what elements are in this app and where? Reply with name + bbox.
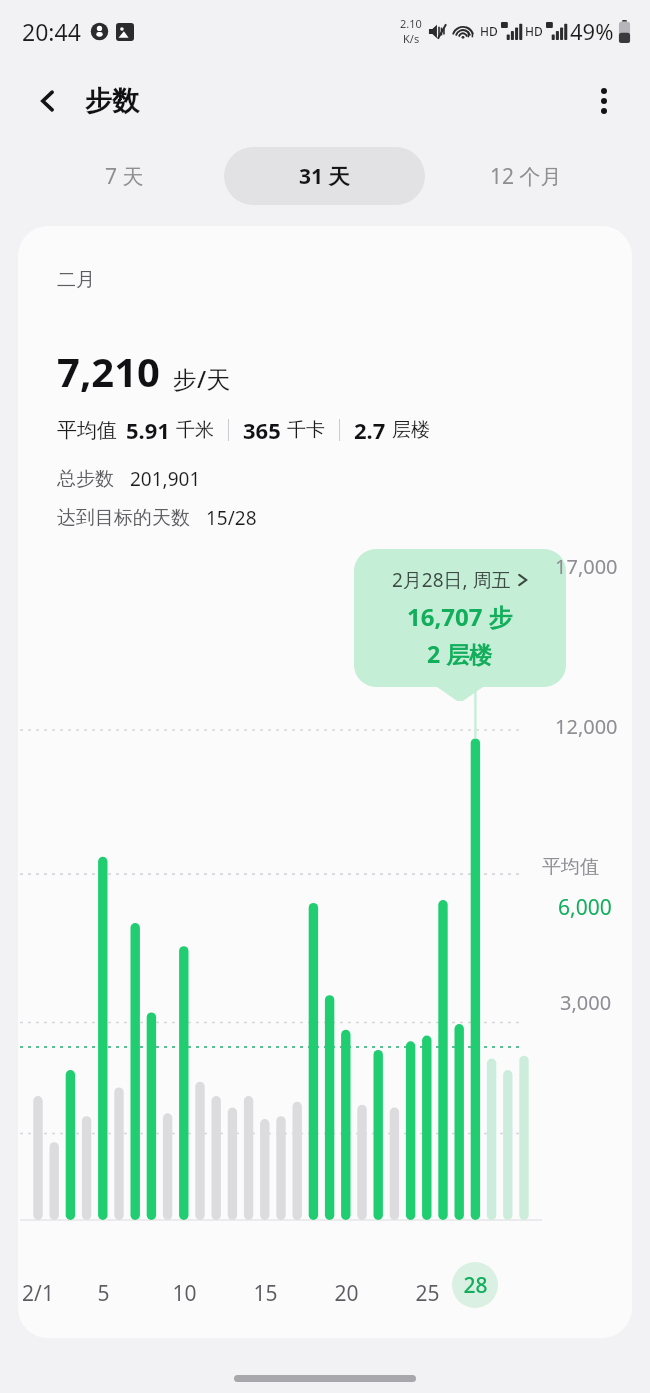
staticText: 达到目标的天数 — [57, 506, 190, 530]
staticText: 3,000 — [560, 989, 612, 1016]
button[interactable]: 12 个月 — [425, 147, 626, 205]
staticText: 20 — [334, 1279, 359, 1308]
staticText: 365 — [243, 415, 281, 445]
staticText: 12 个月 — [490, 162, 562, 191]
staticText: 总步数 — [57, 467, 114, 491]
button[interactable]: More options — [582, 79, 626, 123]
staticText: 步数 — [85, 84, 139, 118]
staticText: 12,000 — [555, 713, 618, 740]
staticText: 6,000 — [558, 893, 612, 922]
staticText: 25 — [415, 1279, 440, 1308]
staticText: 49% — [570, 16, 614, 46]
staticText: 平均值 — [57, 418, 117, 443]
staticText: 千米 — [176, 418, 214, 442]
staticText: 2 层楼 — [427, 638, 493, 669]
staticText: 步/天 — [173, 362, 231, 395]
button[interactable]: Back — [26, 79, 70, 123]
staticText: 20:44 — [22, 16, 81, 47]
staticText: 10 — [172, 1279, 197, 1308]
staticText: 2.7 — [354, 415, 386, 445]
staticText: 17,000 — [555, 553, 618, 580]
staticText: 千卡 — [287, 418, 325, 442]
staticText: 7,210 — [57, 344, 160, 398]
staticText: 二月 — [57, 268, 95, 292]
staticText: 201,901 — [130, 466, 201, 492]
staticText: HD — [480, 23, 498, 39]
staticText: 2月28日, 周五 — [392, 567, 511, 593]
button[interactable]: 2月28日, 周五 — [354, 549, 566, 687]
staticText: 平均值 — [542, 855, 599, 879]
staticText: 7 天 — [105, 162, 144, 191]
button[interactable]: 7 天 — [24, 147, 224, 205]
staticText: 2.10 — [400, 16, 422, 31]
button[interactable]: 31 天 — [224, 147, 425, 205]
staticText: 层楼 — [392, 418, 430, 442]
staticText: 15/28 — [206, 505, 257, 531]
staticText: 2/1 — [22, 1279, 54, 1308]
staticText: 31 天 — [299, 162, 350, 191]
staticText: 16,707 步 — [407, 600, 513, 633]
staticText: HD — [525, 23, 543, 39]
staticText: 28 — [463, 1271, 488, 1300]
staticText: 5.91 — [126, 415, 170, 445]
staticText: 5 — [97, 1279, 110, 1308]
staticText: K/s — [403, 31, 420, 46]
staticText: 15 — [253, 1279, 278, 1308]
